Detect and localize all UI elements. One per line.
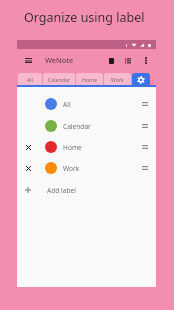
button[interactable]: All: [18, 73, 42, 87]
other: Reorder: [140, 99, 150, 109]
staticText: Add label: [47, 186, 76, 195]
button[interactable]: Calendar: [43, 73, 75, 87]
button[interactable]: Add label: [17, 179, 156, 201]
button[interactable]: List view: [121, 54, 134, 67]
button[interactable]: More options: [140, 54, 152, 66]
staticText: All: [63, 100, 71, 109]
other: Reorder: [140, 121, 150, 131]
staticText: Home: [63, 143, 82, 152]
staticText: WeNote: [45, 55, 74, 65]
other: Reorder: [140, 163, 150, 173]
button[interactable]: All: [17, 93, 156, 115]
staticText: Home: [82, 76, 97, 83]
button[interactable]: Remove Home: [17, 136, 156, 158]
staticText: All: [27, 76, 33, 83]
staticText: Calendar: [48, 76, 70, 83]
staticText: Calendar: [63, 122, 91, 131]
button[interactable]: Menu: [21, 53, 35, 67]
button[interactable]: New note: [105, 54, 118, 67]
button[interactable]: Work: [104, 73, 131, 87]
button[interactable]: Home: [76, 73, 103, 87]
button[interactable]: Calendar: [17, 115, 156, 137]
button[interactable]: Remove Work: [17, 157, 156, 179]
staticText: Work: [63, 164, 80, 173]
staticText: Organize using label: [24, 9, 145, 26]
button[interactable]: Remove Home: [22, 141, 34, 153]
staticText: Work: [111, 76, 124, 83]
other: Reorder: [140, 142, 150, 152]
button[interactable]: Remove Work: [22, 162, 34, 174]
button[interactable]: Settings: [132, 73, 150, 87]
